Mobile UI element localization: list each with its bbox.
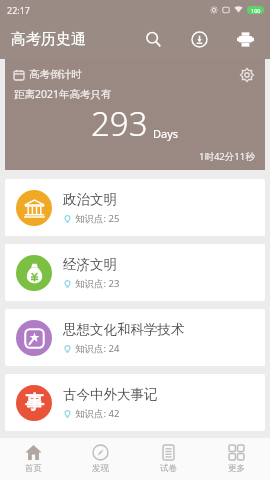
staticText: 知识点: 24 [75, 342, 120, 355]
button[interactable]: 试卷 [134, 438, 202, 480]
staticText: 事 [25, 391, 44, 415]
button[interactable]: Download [186, 26, 212, 52]
button[interactable]: Settings [236, 64, 258, 86]
button[interactable]: 思想文化和科学技术 [5, 309, 265, 366]
button[interactable]: 政治文明 [5, 179, 265, 236]
button[interactable]: 高考倒计时 [5, 59, 265, 170]
staticText: 高考历史通 [11, 30, 86, 49]
staticText: 经济文明 [63, 256, 117, 273]
staticText: 22:17 [7, 4, 31, 16]
button[interactable]: 发现 [67, 438, 134, 480]
staticText: 发现 [92, 463, 109, 474]
staticText: 思想文化和科学技术 [63, 321, 185, 338]
staticText: 更多 [228, 463, 245, 474]
button[interactable]: 更多 [202, 438, 270, 480]
staticText: 高考倒计时 [29, 68, 82, 81]
staticText: 知识点: 25 [75, 212, 120, 225]
staticText: 293 [91, 101, 148, 146]
button[interactable]: Search [140, 26, 166, 52]
staticText: Days [153, 126, 179, 141]
staticText: 试卷 [160, 463, 177, 474]
staticText: 知识点: 42 [75, 407, 120, 420]
staticText: 首页 [25, 463, 42, 474]
button[interactable]: 首页 [0, 438, 67, 480]
staticText: 政治文明 [63, 191, 117, 208]
button[interactable]: 经济文明 [5, 244, 265, 301]
staticText: 古今中外大事记 [63, 386, 158, 403]
button[interactable]: 事 [5, 374, 265, 431]
staticText: 知识点: 23 [75, 277, 120, 290]
staticText: 100 [251, 7, 261, 14]
staticText: 距离2021年高考只有 [14, 87, 112, 101]
staticText: 1时42分11秒 [199, 150, 255, 163]
button[interactable]: Print [232, 26, 258, 52]
